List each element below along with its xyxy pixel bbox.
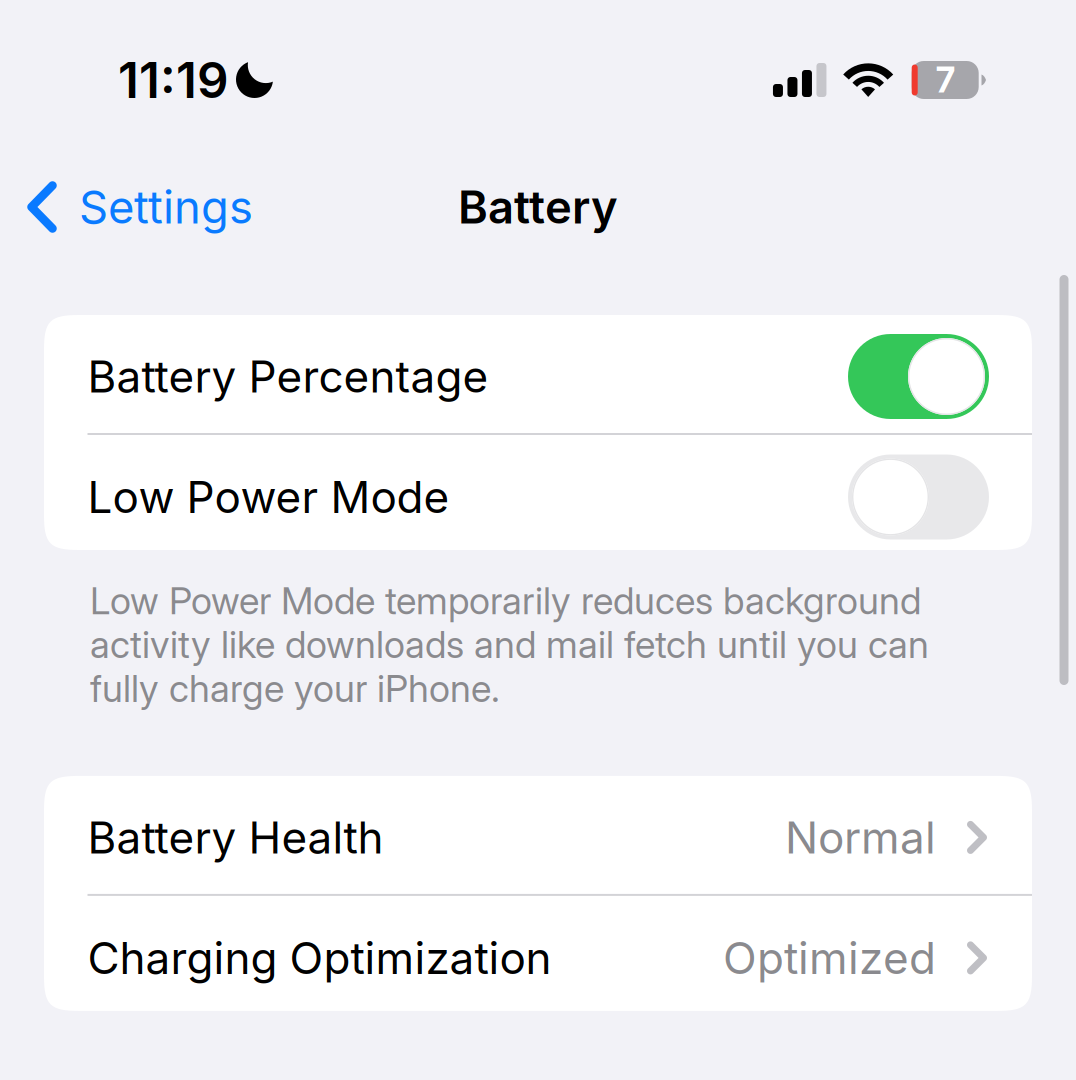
staticText: 11:19 xyxy=(118,50,229,110)
staticText: Normal xyxy=(785,811,936,864)
button[interactable]: Low Power Mode xyxy=(44,435,1032,550)
staticText: Settings xyxy=(79,180,253,234)
staticText: Low Power Mode xyxy=(87,470,449,524)
staticText: Charging Optimization xyxy=(87,931,551,984)
button[interactable]: Charging Optimization xyxy=(44,896,1032,1011)
staticText: Battery Percentage xyxy=(87,350,488,403)
button[interactable]: Battery Health xyxy=(44,776,1032,894)
button[interactable]: Settings xyxy=(0,166,253,248)
staticText: 7 xyxy=(936,59,955,101)
staticText: Low Power Mode temporarily reduces backg… xyxy=(90,578,929,711)
staticText: Battery xyxy=(458,180,618,234)
staticText: Optimized xyxy=(723,931,936,984)
button[interactable]: Battery Percentage xyxy=(44,315,1032,433)
staticText: Battery Health xyxy=(87,811,383,864)
